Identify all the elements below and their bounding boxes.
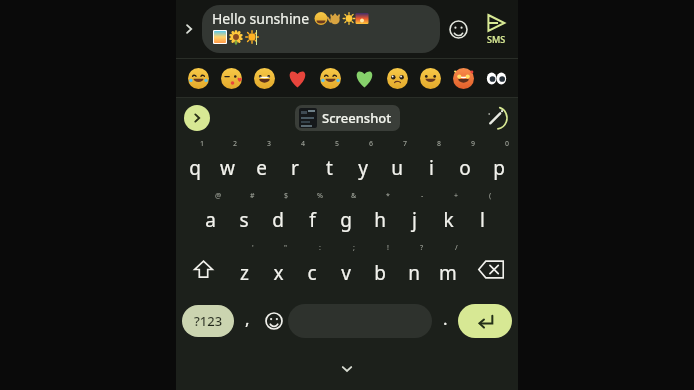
button[interactable]: 8 — [414, 138, 448, 190]
button[interactable]: Hide keyboard — [336, 358, 358, 380]
button[interactable]: Emoji — [260, 296, 288, 346]
staticText: q — [189, 155, 201, 181]
button[interactable]: ; — [329, 242, 363, 296]
button[interactable]: More suggestions — [184, 105, 210, 131]
staticText: 2 — [233, 139, 238, 149]
staticText: h — [374, 207, 386, 233]
button[interactable]: ' — [228, 242, 261, 296]
staticText: 0 — [505, 139, 510, 149]
staticText: l — [480, 207, 485, 233]
staticText: / — [455, 243, 458, 253]
staticText: x — [273, 260, 284, 286]
staticText: 6 — [369, 139, 374, 149]
button[interactable]: 1 — [178, 138, 211, 190]
button[interactable]: Emoji suggestion — [415, 63, 445, 93]
button[interactable]: : — [295, 242, 329, 296]
staticText: " — [284, 243, 288, 253]
staticText: 4 — [301, 139, 306, 149]
button[interactable]: Send SMS — [476, 0, 516, 58]
staticText: u — [391, 155, 403, 181]
button[interactable]: Expand — [176, 0, 202, 58]
staticText: p — [493, 155, 505, 181]
staticText: ?123 — [194, 312, 223, 330]
staticText: k — [443, 207, 454, 233]
staticText: , — [245, 307, 250, 330]
staticText: r — [291, 155, 299, 181]
staticText: ! — [387, 243, 389, 253]
button[interactable]: 4 — [278, 138, 312, 190]
staticText: z — [240, 260, 249, 286]
staticText: $ — [284, 191, 289, 201]
button[interactable]: . — [432, 296, 458, 346]
staticText: w — [220, 155, 235, 181]
staticText: i — [429, 155, 434, 181]
button[interactable]: & — [329, 190, 363, 242]
button[interactable]: ? — [397, 242, 431, 296]
button[interactable]: % — [295, 190, 329, 242]
button[interactable]: Emoji suggestion — [448, 63, 478, 93]
button[interactable]: Emoji suggestion — [382, 63, 412, 93]
button[interactable]: Emoji suggestion — [282, 63, 312, 93]
staticText: a — [205, 207, 216, 233]
button[interactable]: " — [261, 242, 295, 296]
staticText: d — [272, 207, 284, 233]
staticText: + — [454, 191, 459, 201]
staticText: @ — [215, 191, 222, 201]
staticText: ( — [489, 191, 492, 201]
staticText: % — [317, 191, 323, 201]
staticText: s — [239, 207, 249, 233]
staticText: c — [307, 260, 317, 286]
button[interactable]: ( — [465, 190, 499, 242]
staticText: e — [256, 155, 267, 181]
button[interactable]: ?123 — [182, 305, 234, 337]
staticText: Screenshot — [322, 109, 392, 127]
staticText: ' — [252, 243, 254, 253]
button[interactable]: 5 — [312, 138, 346, 190]
button[interactable]: @ — [194, 190, 227, 242]
staticText: 7 — [403, 139, 408, 149]
button[interactable]: / — [431, 242, 465, 296]
staticText: . — [443, 307, 448, 330]
button[interactable]: Emoji suggestion — [315, 63, 345, 93]
button[interactable]: Enter — [458, 304, 512, 338]
staticText: & — [351, 191, 357, 201]
button[interactable]: 9 — [448, 138, 482, 190]
staticText: t — [326, 155, 333, 181]
staticText: * — [386, 191, 390, 201]
button[interactable]: Emoji suggestion — [249, 63, 279, 93]
button[interactable]: ! — [363, 242, 397, 296]
button[interactable]: 7 — [380, 138, 414, 190]
staticText: ; — [353, 243, 355, 253]
button[interactable]: 6 — [346, 138, 380, 190]
button[interactable]: - — [397, 190, 431, 242]
staticText: y — [358, 155, 368, 181]
button[interactable]: 2 — [211, 138, 244, 190]
button[interactable]: Shift — [178, 242, 228, 296]
staticText: g — [340, 207, 352, 233]
button[interactable]: 3 — [244, 138, 278, 190]
staticText: SMS — [487, 33, 506, 45]
button[interactable]: Emoji suggestion — [349, 63, 379, 93]
staticText: v — [341, 260, 351, 286]
button[interactable]: Emoji suggestion — [481, 63, 511, 93]
button[interactable]: $ — [261, 190, 295, 242]
button[interactable]: Emoji suggestion — [183, 63, 213, 93]
button[interactable]: Space — [288, 304, 432, 338]
staticText: f — [309, 207, 316, 233]
button[interactable]: Backspace — [465, 242, 516, 296]
button[interactable]: , — [234, 296, 260, 346]
button[interactable]: 0 — [482, 138, 516, 190]
button[interactable]: Emoji keyboard — [440, 11, 476, 47]
staticText: # — [250, 191, 255, 201]
staticText: o — [459, 155, 471, 181]
staticText: Hello sunshine — [212, 9, 310, 28]
staticText: 5 — [335, 139, 340, 149]
button[interactable]: * — [363, 190, 397, 242]
button[interactable]: AI writing tools — [482, 104, 510, 132]
button[interactable]: # — [227, 190, 261, 242]
button[interactable]: Hello sunshine — [202, 5, 440, 53]
staticText: 8 — [437, 139, 442, 149]
button[interactable]: Screenshot — [295, 105, 400, 131]
button[interactable]: Emoji suggestion — [216, 63, 246, 93]
button[interactable]: + — [431, 190, 465, 242]
